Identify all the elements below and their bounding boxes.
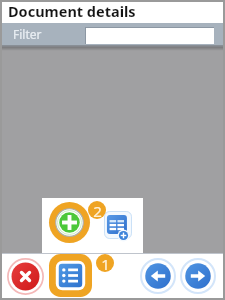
button[interactable]: Previous bbox=[140, 258, 176, 294]
button[interactable] bbox=[85, 27, 214, 44]
button[interactable]: Next bbox=[180, 258, 216, 294]
button[interactable]: Add bbox=[49, 202, 90, 243]
button[interactable]: List bbox=[49, 254, 92, 297]
staticText: Filter bbox=[13, 26, 42, 42]
button[interactable]: New document bbox=[104, 211, 132, 239]
button[interactable]: Close bbox=[7, 258, 44, 295]
staticText: Document details bbox=[8, 1, 136, 21]
staticText: 2 bbox=[93, 201, 102, 219]
staticText: 1 bbox=[101, 254, 110, 272]
